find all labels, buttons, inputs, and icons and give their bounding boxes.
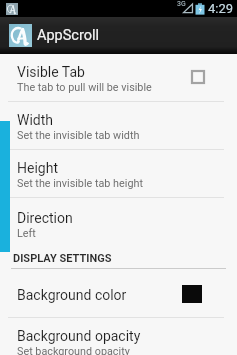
- button[interactable]: Background opacity: [0, 312, 237, 355]
- staticText: Set background opacity: [17, 345, 130, 355]
- staticText: 3G: [177, 0, 186, 8]
- staticText: Direction: [17, 210, 73, 226]
- button[interactable]: DISPLAY SETTINGS: [0, 245, 237, 266]
- button[interactable]: Visible Tab checkbox: [191, 70, 205, 84]
- button[interactable]: Height: [0, 150, 237, 197]
- staticText: Background opacity: [17, 328, 141, 344]
- staticText: 4:29: [208, 1, 234, 16]
- staticText: The tab to pull will be visible: [17, 81, 152, 94]
- staticText: Visible Tab: [17, 64, 85, 80]
- button[interactable]: Direction: [0, 198, 237, 245]
- staticText: Height: [17, 160, 58, 176]
- button[interactable]: AppScroll: [9, 17, 237, 54]
- staticText: Width: [17, 112, 54, 128]
- button[interactable]: Background color: [0, 266, 237, 317]
- staticText: Background color: [17, 287, 127, 303]
- button[interactable]: Width: [0, 102, 237, 149]
- staticText: Set the invisible tab width: [17, 129, 140, 142]
- staticText: Left: [17, 227, 36, 240]
- staticText: AppScroll: [37, 27, 100, 44]
- staticText: Set the invisible tab height: [17, 177, 143, 190]
- staticText: DISPLAY SETTINGS: [13, 252, 112, 265]
- button[interactable]: Visible Tab: [0, 54, 237, 101]
